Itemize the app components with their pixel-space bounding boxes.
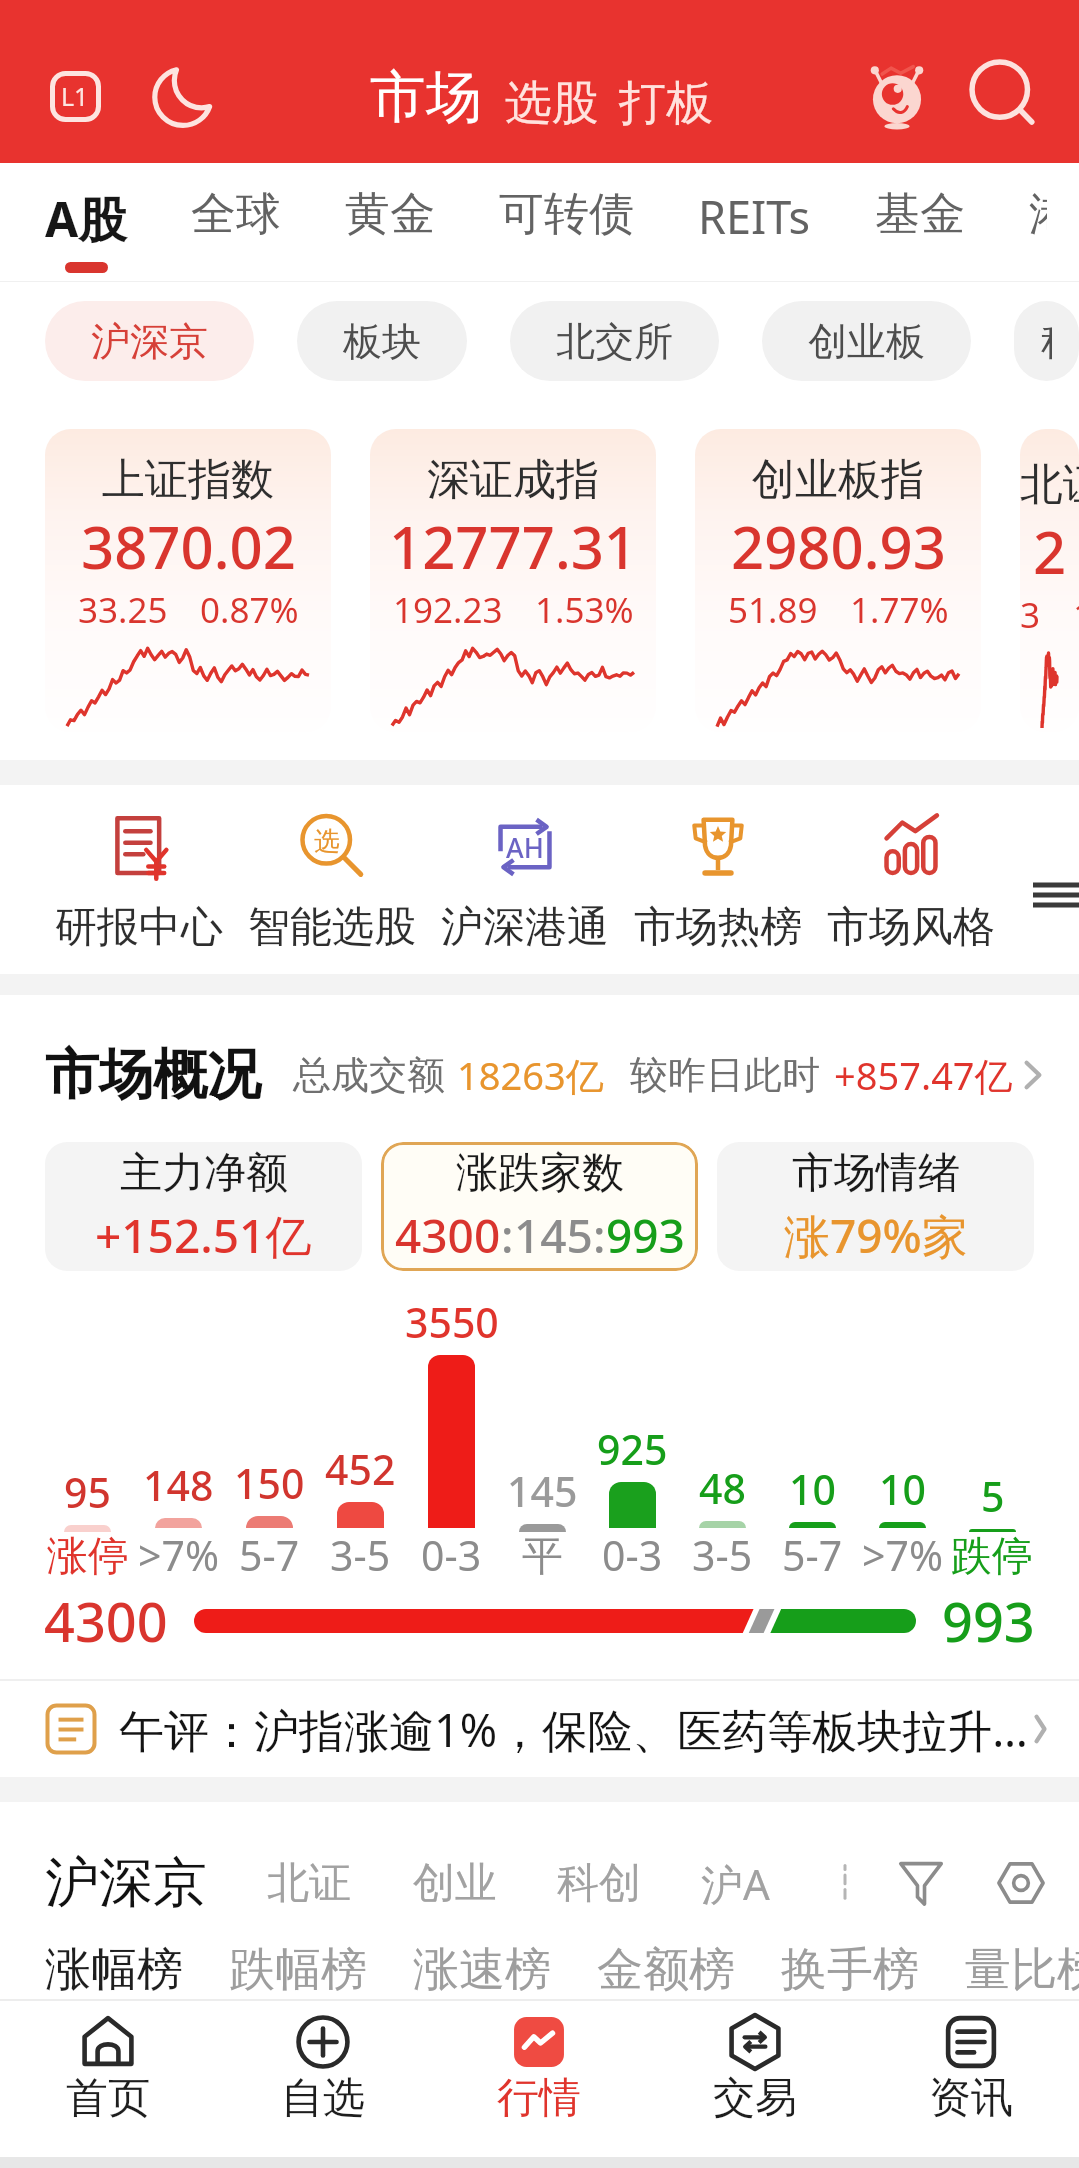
button[interactable]: 创业板 [762, 301, 971, 381]
button[interactable]: 首页 [0, 2001, 215, 2125]
button[interactable]: 可转债 [467, 163, 666, 264]
staticText: 993 [942, 1584, 1035, 1658]
staticText: 0-3 [602, 1527, 663, 1583]
button[interactable]: 换手榜 [781, 1941, 919, 1999]
button[interactable]: 市场风格 [814, 785, 1007, 954]
button[interactable]: 全球 [159, 163, 313, 264]
button[interactable]: Settings [993, 1855, 1049, 1911]
button[interactable]: 涨幅榜 [45, 1941, 183, 1999]
staticText: 452 [325, 1441, 396, 1497]
button[interactable]: A股 [13, 163, 159, 273]
button[interactable]: 科创 [557, 1857, 641, 1910]
staticText: 创业板指 [752, 453, 924, 507]
button[interactable]: Night mode [143, 56, 223, 136]
staticText: 5-7 [782, 1527, 843, 1583]
button[interactable]: 自选 [215, 2001, 431, 2125]
button[interactable]: 金额榜 [597, 1941, 735, 1999]
staticText: 148 [143, 1457, 214, 1513]
staticText: 3-5 [330, 1527, 391, 1583]
button[interactable]: 市场情绪 [717, 1142, 1034, 1271]
staticText: 95 [64, 1464, 111, 1520]
staticText: 沪深京 [91, 317, 208, 366]
staticText: 3550 [405, 1294, 499, 1350]
staticText: 科 [1041, 317, 1052, 366]
button[interactable]: 基金 [843, 163, 997, 264]
button[interactable]: 研报中心 [42, 785, 235, 954]
button[interactable]: 打板 [619, 74, 713, 133]
staticText: 板块 [343, 317, 421, 366]
staticText: 10 [879, 1461, 926, 1517]
button[interactable]: AH [428, 785, 621, 954]
button[interactable]: 港股 [997, 163, 1079, 264]
staticText: 首页 [66, 2072, 150, 2125]
staticText: 智能选股 [248, 901, 416, 954]
button[interactable]: 市场概况 [45, 1041, 1053, 1109]
staticText: 跌停 [951, 1531, 1033, 1583]
button[interactable]: 创业板指 [695, 429, 981, 732]
button[interactable]: More options [825, 1863, 865, 1903]
staticText: 145 [507, 1463, 578, 1519]
button[interactable]: 量比榜 [965, 1941, 1079, 1999]
button[interactable]: 科 [1014, 301, 1079, 381]
staticText: 3 [1020, 591, 1041, 639]
staticText: +857.47亿 [834, 1049, 1013, 1101]
staticText: 4300 [395, 1204, 501, 1267]
staticText: 10 [789, 1461, 836, 1517]
staticText: +152.51亿 [95, 1204, 312, 1267]
button[interactable]: 沪A [701, 1855, 770, 1912]
staticText: : [501, 1204, 514, 1267]
staticText: 150 [234, 1455, 305, 1511]
staticText: 12777.31 [389, 507, 638, 586]
staticText: 5 [981, 1468, 1005, 1524]
button[interactable]: AI assistant [852, 52, 942, 142]
button[interactable]: 沪深京 [45, 1849, 207, 1917]
staticText: 市场情绪 [792, 1147, 960, 1200]
button[interactable]: REITs [666, 163, 843, 268]
button[interactable]: 沪深京 [45, 301, 254, 381]
staticText: 1.77% [850, 586, 949, 634]
button[interactable]: 交易 [647, 2001, 863, 2125]
staticText: 主力净额 [120, 1147, 288, 1200]
staticText: 总成交额 [293, 1051, 445, 1099]
button[interactable]: 北证 [267, 1857, 351, 1910]
button[interactable]: 深证成指 [370, 429, 656, 732]
button[interactable]: 创业 [413, 1857, 497, 1910]
button[interactable]: 选 [235, 785, 428, 954]
staticText: 0-3 [421, 1527, 482, 1583]
button[interactable]: 板块 [297, 301, 467, 381]
staticText: 1.53% [535, 586, 634, 634]
button[interactable]: 市场热榜 [621, 785, 814, 954]
staticText: 基金 [875, 186, 965, 243]
button[interactable]: 涨跌家数 [381, 1142, 698, 1271]
button[interactable]: 黄金 [313, 163, 467, 264]
staticText: 港股 [1029, 186, 1047, 243]
staticText: AH [506, 829, 544, 866]
button[interactable]: 市场 [370, 62, 482, 133]
staticText: 午评：沪指涨逾1%，保险、医药等板块拉升… [119, 1699, 1028, 1760]
staticText: 北交所 [556, 317, 673, 366]
staticText: 全球 [191, 186, 281, 243]
button[interactable]: 选股 [505, 74, 599, 133]
button[interactable]: 上证指数 [45, 429, 331, 732]
button[interactable]: Filter [893, 1855, 949, 1911]
staticText: 市场热榜 [634, 901, 802, 954]
staticText: 涨跌家数 [456, 1147, 624, 1200]
button[interactable]: L1 quote level [35, 56, 115, 136]
staticText: 交易 [713, 2072, 797, 2125]
button[interactable]: 北交所 [510, 301, 719, 381]
button[interactable]: 涨速榜 [413, 1941, 551, 1999]
button[interactable]: Search [958, 50, 1048, 140]
staticText: 研报中心 [55, 901, 223, 954]
button[interactable]: 行情 [431, 2001, 647, 2125]
staticText: 3-5 [692, 1527, 753, 1583]
button[interactable]: 资讯 [863, 2001, 1079, 2125]
button[interactable]: 北证50 [1020, 429, 1079, 732]
button[interactable]: 跌幅榜 [229, 1941, 367, 1999]
staticText: 3870.02 [81, 507, 296, 586]
staticText: 2980.93 [731, 507, 946, 586]
staticText: 黄金 [345, 186, 435, 243]
staticText: 行情 [497, 2072, 581, 2125]
button[interactable]: 午评：沪指涨逾1%，保险、医药等板块拉升… [0, 1681, 1079, 1777]
staticText: 资讯 [929, 2072, 1013, 2125]
button[interactable]: 主力净额 [45, 1142, 362, 1271]
